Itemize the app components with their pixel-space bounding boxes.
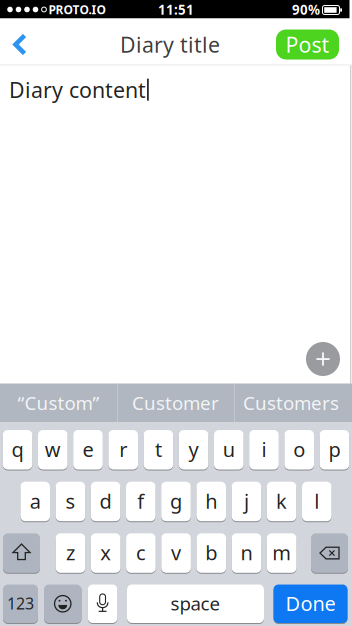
button[interactable]: g	[161, 481, 191, 522]
button[interactable]: Add	[306, 342, 340, 376]
button[interactable]: x	[91, 533, 120, 573]
staticText: y	[189, 436, 199, 463]
button[interactable]: Delete	[311, 533, 348, 573]
staticText: l	[314, 488, 319, 514]
staticText: m	[272, 539, 291, 566]
button[interactable]: r	[108, 429, 138, 470]
button[interactable]: u	[214, 429, 244, 470]
button[interactable]: k	[267, 481, 296, 522]
button[interactable]: 123	[3, 584, 38, 623]
staticText: j	[244, 488, 249, 514]
staticText: h	[205, 488, 217, 514]
staticText: a	[30, 488, 41, 514]
button[interactable]: n	[232, 533, 261, 573]
button[interactable]: a	[20, 481, 50, 522]
staticText: 123	[7, 593, 34, 614]
staticText: x	[100, 539, 111, 566]
staticText: Diary content	[9, 75, 146, 104]
staticText: u	[223, 436, 235, 463]
staticText: r	[119, 436, 127, 463]
button[interactable]: b	[196, 533, 226, 573]
button[interactable]: Back	[0, 21, 44, 67]
staticText: b	[205, 539, 217, 566]
button[interactable]: Shift	[3, 533, 40, 573]
staticText: Post	[285, 30, 329, 59]
button[interactable]: Customers	[234, 383, 348, 422]
button[interactable]: j	[232, 481, 261, 522]
button[interactable]: c	[126, 533, 156, 573]
staticText: n	[240, 539, 252, 566]
button[interactable]: m	[267, 533, 296, 573]
button[interactable]: Customer	[118, 383, 232, 422]
button[interactable]: “Custom”	[1, 383, 115, 422]
staticText: 11:51	[158, 1, 194, 18]
staticText: c	[136, 539, 146, 566]
button[interactable]: v	[161, 533, 191, 573]
staticText: Customers	[243, 390, 339, 415]
staticText: space	[170, 591, 220, 616]
staticText: e	[82, 436, 93, 463]
staticText: s	[65, 488, 75, 514]
button[interactable]: d	[91, 481, 120, 522]
staticText: g	[170, 488, 182, 514]
button[interactable]: f	[126, 481, 156, 522]
button[interactable]: s	[56, 481, 85, 522]
staticText: o	[293, 436, 305, 463]
staticText: “Custom”	[17, 390, 99, 415]
staticText: p	[328, 436, 340, 463]
button[interactable]: h	[196, 481, 226, 522]
button[interactable]: i	[249, 429, 279, 470]
button[interactable]: w	[38, 429, 68, 470]
staticText: q	[12, 436, 24, 463]
button[interactable]: l	[302, 481, 332, 522]
staticText: v	[171, 539, 181, 566]
staticText: d	[100, 488, 112, 514]
button[interactable]: z	[56, 533, 85, 573]
staticText: k	[276, 488, 287, 514]
button[interactable]: Post	[276, 29, 339, 59]
staticText: Diary title	[120, 30, 220, 59]
staticText: z	[66, 539, 75, 566]
button[interactable]: e	[73, 429, 103, 470]
staticText: i	[261, 436, 266, 463]
staticText: PROTO.IO	[48, 1, 105, 17]
button[interactable]: o	[284, 429, 314, 470]
staticText: Customer	[132, 390, 219, 415]
staticText: w	[45, 436, 61, 463]
button[interactable]: space	[127, 584, 264, 623]
button[interactable]: Dictate	[88, 584, 117, 623]
button[interactable]: p	[320, 429, 349, 470]
button[interactable]: y	[179, 429, 208, 470]
staticText: Done	[285, 590, 335, 617]
staticText: t	[155, 436, 162, 463]
button[interactable]: Emoji	[44, 584, 81, 623]
staticText: f	[137, 488, 144, 514]
button[interactable]: t	[144, 429, 173, 470]
button[interactable]: Done	[273, 584, 347, 623]
staticText: 90%	[292, 1, 320, 18]
button[interactable]: q	[3, 429, 32, 470]
